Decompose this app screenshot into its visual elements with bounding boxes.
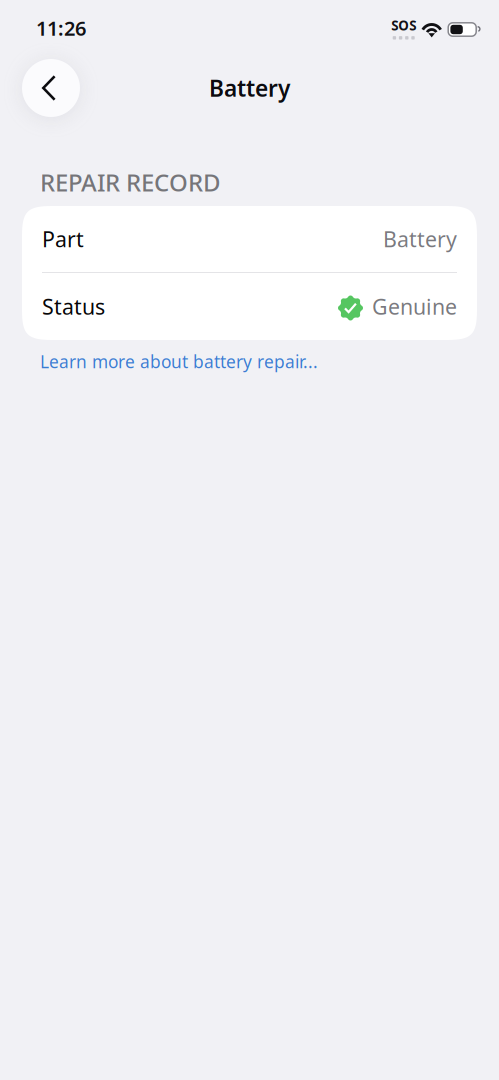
staticText: Battery [383,225,457,253]
staticText: Genuine [372,292,457,321]
staticText: SOS [391,16,416,34]
staticText: REPAIR RECORD [40,166,221,198]
button[interactable]: Back [22,59,80,117]
staticText: Part [42,225,84,253]
staticText: Learn more about battery repair... [40,350,318,373]
button[interactable]: Learn more about battery repair... [40,345,318,378]
staticText: Status [42,292,105,321]
staticText: Battery [209,73,290,103]
staticText: 11:26 [36,15,86,41]
